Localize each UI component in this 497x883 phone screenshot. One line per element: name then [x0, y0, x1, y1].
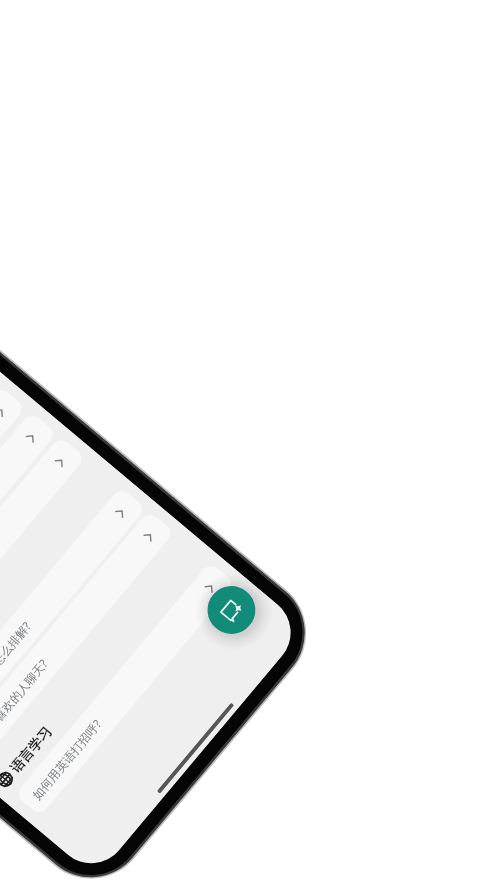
- button[interactable]: New chat: [198, 576, 265, 644]
- button[interactable]: 男生如何穿搭更显高?: [0, 412, 57, 666]
- button[interactable]: 家里植物叶子发黄怎么救?: [0, 386, 26, 640]
- staticText: 最近压力很大, 怎么排解?: [0, 618, 35, 727]
- button[interactable]: 怎么和喜欢的人聊天?: [0, 510, 174, 765]
- button[interactable]: 如何用英语打招呼?: [14, 562, 236, 816]
- staticText: 怎么和喜欢的人聊天?: [0, 655, 51, 751]
- staticText: 语言学习: [6, 722, 56, 776]
- button[interactable]: 最近压力很大, 怎么排解?: [0, 487, 146, 741]
- button[interactable]: 学生党女生, 怎么提升魅力: [0, 436, 86, 690]
- staticText: 如何用英语打招呼?: [29, 716, 105, 802]
